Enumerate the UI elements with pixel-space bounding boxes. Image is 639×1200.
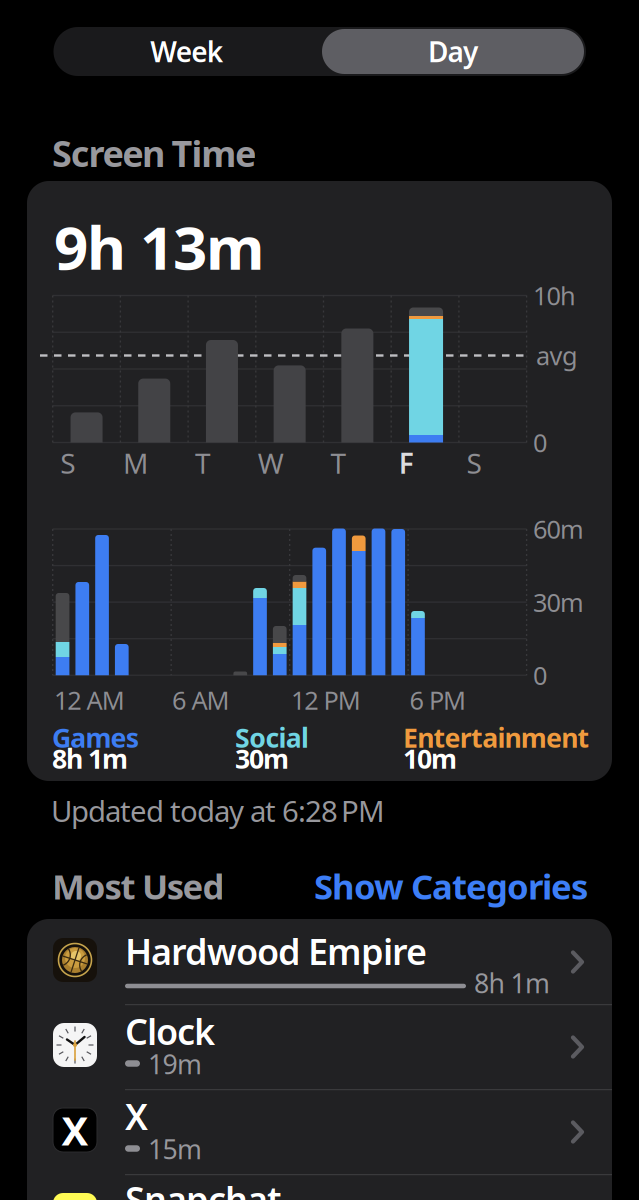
staticText: 12 PM [291,683,361,717]
staticText: avg [536,339,578,372]
staticText: Social [235,720,309,755]
staticText: W [258,444,284,482]
staticText: Most Used [52,863,224,909]
staticText: 30m [533,585,584,619]
staticText: 6 PM [409,683,466,717]
staticText: Show Categories [314,863,588,909]
staticText: Snapchat [125,1175,282,1200]
staticText: Week [150,33,223,70]
staticText: 10h [533,279,576,312]
button[interactable]: Hardwood Empire [27,919,612,1004]
staticText: 0 [533,426,547,459]
staticText: X [125,1092,148,1140]
staticText: Screen Time [52,129,256,177]
staticText: 15m [148,1131,202,1167]
button[interactable]: Snapchat [27,1174,612,1200]
button[interactable]: X [27,1089,612,1174]
staticText: X [61,1103,88,1156]
staticText: 8h 1m [52,741,128,776]
staticText: Entertainment [403,720,589,755]
staticText: 19m [148,1046,202,1082]
button[interactable]: Day [322,29,584,74]
button[interactable]: Clock [27,1004,612,1089]
staticText: 30m [235,741,289,776]
staticText: Games [52,720,139,755]
staticText: T [195,444,211,482]
staticText: 10m [403,741,457,776]
staticText: Clock [125,1007,215,1055]
staticText: T [330,444,346,482]
staticText: 6 AM [172,683,230,717]
staticText: 60m [533,512,584,546]
staticText: Updated today at 6:28 PM [51,791,385,830]
staticText: 8h 1m [474,965,550,1001]
staticText: F [399,444,414,482]
staticText: 12 AM [54,683,125,717]
staticText: Day [428,33,478,70]
staticText: 9h 13m [54,207,265,286]
staticText: S [466,444,481,482]
button[interactable]: Week [53,27,319,76]
staticText: S [60,444,75,482]
staticText: Hardwood Empire [125,927,427,975]
staticText: M [123,444,148,482]
button[interactable]: Show Categories [248,864,588,908]
staticText: 0 [533,658,547,692]
